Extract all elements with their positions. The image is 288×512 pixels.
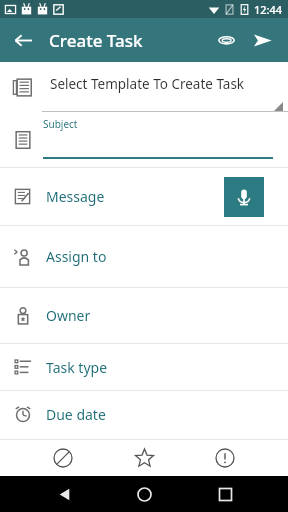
button[interactable]: Assign to (0, 226, 288, 287)
button[interactable]: Recents (208, 477, 242, 511)
button[interactable]: Voice input (224, 177, 264, 217)
button[interactable]: Back (6, 23, 40, 57)
button[interactable]: Cancel (45, 440, 81, 476)
staticText: Subject (43, 117, 78, 131)
button[interactable]: Message (0, 168, 288, 225)
staticText: Owner (46, 306, 91, 325)
staticText: Create Task (49, 29, 143, 52)
button[interactable]: Send (244, 22, 280, 58)
staticText: Task type (46, 358, 108, 377)
button[interactable]: Subject (0, 112, 288, 167)
button[interactable]: Attach (208, 22, 244, 58)
staticText: 12:44 (254, 2, 283, 17)
button[interactable]: Back (47, 477, 81, 511)
button[interactable]: Task type (0, 344, 288, 390)
staticText: Message (46, 187, 105, 206)
button[interactable]: Priority (207, 440, 243, 476)
staticText: Assign to (46, 247, 107, 266)
staticText: Select Template To Create Task (50, 75, 245, 93)
button[interactable]: Favorite (126, 440, 162, 476)
button[interactable]: Home (127, 477, 161, 511)
button[interactable]: Select Template To Create Task (0, 62, 288, 112)
button[interactable]: Due date (0, 391, 288, 437)
button[interactable]: Owner (0, 288, 288, 343)
staticText: Due date (46, 405, 106, 424)
